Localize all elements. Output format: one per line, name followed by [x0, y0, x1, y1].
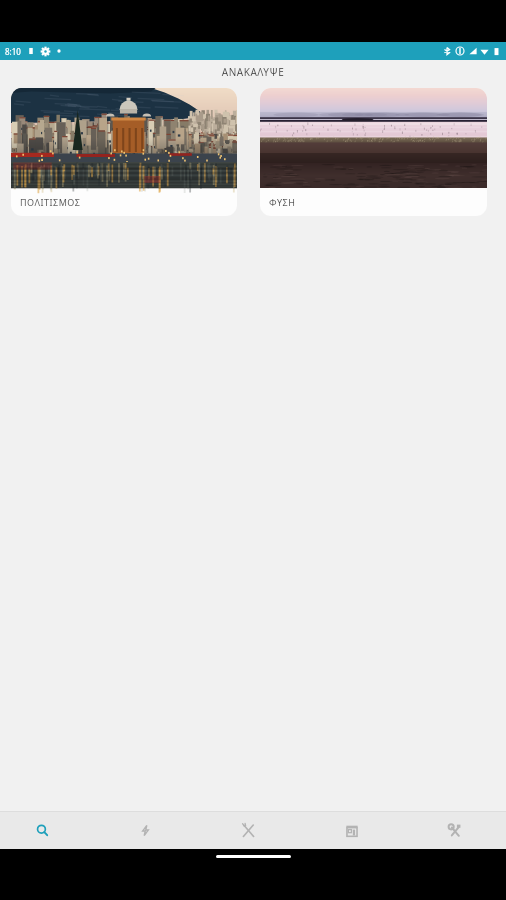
- button[interactable]: More: [403, 812, 506, 849]
- staticText: ΦΥΣΗ: [269, 196, 296, 208]
- button[interactable]: ΠΟΛΙΤΙΣΜΟΣ: [11, 88, 237, 216]
- button[interactable]: Food: [197, 812, 300, 849]
- button[interactable]: Museums: [300, 812, 403, 849]
- staticText: ΑΝΑΚΑΛΥΨΕ: [0, 65, 506, 79]
- staticText: ΠΟΛΙΤΙΣΜΟΣ: [20, 196, 81, 208]
- button[interactable]: Search: [0, 812, 84, 849]
- button[interactable]: Offers: [94, 812, 197, 849]
- button[interactable]: ΦΥΣΗ: [260, 88, 487, 216]
- staticText: 8:10: [5, 46, 21, 57]
